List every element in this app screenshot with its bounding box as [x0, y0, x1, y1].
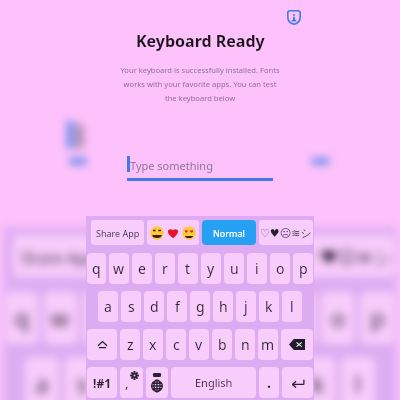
button[interactable]: g [183, 356, 217, 400]
button[interactable]: n [235, 329, 255, 360]
button[interactable]: s [121, 291, 141, 322]
button[interactable]: k [259, 291, 279, 322]
staticText: y [207, 259, 215, 278]
button[interactable]: p [293, 253, 313, 284]
button[interactable]: d [144, 291, 164, 322]
staticText: i [255, 259, 259, 278]
button[interactable]: y [202, 291, 236, 344]
staticText: p [370, 301, 386, 334]
button[interactable]: d [104, 356, 138, 400]
button[interactable]: t [178, 253, 198, 284]
button[interactable]: s [64, 356, 98, 400]
button[interactable]: q [87, 253, 106, 284]
staticText: c [173, 335, 180, 354]
staticText: e [138, 259, 146, 278]
button[interactable]: Normal [203, 234, 296, 277]
button[interactable]: a [98, 291, 118, 322]
button[interactable]: o [270, 253, 290, 284]
staticText: . [267, 373, 271, 392]
button[interactable]: Normal [202, 220, 256, 245]
button[interactable]: e [132, 253, 152, 284]
button[interactable]: l [341, 356, 375, 400]
staticText: Share App [96, 227, 140, 239]
staticText: g [193, 367, 209, 399]
button[interactable]: f [143, 356, 178, 400]
staticText: f [175, 297, 180, 316]
button[interactable]: Change language [146, 367, 168, 398]
staticText: Normal [213, 227, 245, 239]
button[interactable]: Share App [12, 234, 104, 277]
staticText: g [196, 297, 205, 316]
staticText: k [312, 367, 326, 399]
button[interactable]: o [320, 291, 355, 344]
staticText: t [185, 259, 191, 278]
button[interactable]: v [189, 329, 209, 360]
button[interactable]: !#1 [87, 367, 117, 398]
staticText: v [195, 335, 203, 354]
button[interactable]: t [162, 291, 197, 344]
button[interactable]: i [247, 253, 267, 284]
button[interactable]: g [190, 291, 210, 322]
staticText: a [35, 367, 49, 399]
button[interactable]: j [236, 291, 256, 322]
staticText: s [76, 367, 88, 399]
button[interactable]: u [241, 291, 276, 344]
button[interactable]: l [282, 291, 302, 322]
staticText: r [135, 301, 145, 334]
staticText: h [219, 297, 228, 316]
button[interactable] [147, 220, 199, 245]
button[interactable]: ♡♥☹≋シ [301, 234, 394, 277]
button[interactable]: h [213, 291, 233, 322]
staticText: Normal [222, 246, 277, 267]
button[interactable]: p [360, 291, 394, 344]
staticText: o [276, 259, 285, 278]
staticText: n [241, 335, 250, 354]
staticText: h [233, 367, 248, 399]
staticText: w [50, 301, 71, 334]
staticText: x [149, 335, 157, 354]
button[interactable]: y [201, 253, 221, 284]
staticText: q [14, 301, 30, 334]
staticText: j [276, 367, 283, 399]
button[interactable]: h [222, 356, 257, 400]
button[interactable]: b [212, 329, 232, 360]
button[interactable]: Shift [87, 329, 117, 360]
button[interactable]: Share App [91, 220, 144, 245]
button[interactable]: j [262, 356, 296, 400]
button[interactable]: k [301, 356, 336, 400]
button[interactable]: w [43, 291, 78, 344]
button[interactable]: e [83, 291, 117, 344]
staticText: e [93, 301, 107, 334]
staticText: t [174, 301, 184, 334]
button[interactable]: i [281, 291, 315, 344]
button[interactable]: w [109, 253, 129, 284]
button[interactable]: r [123, 291, 157, 344]
button[interactable]: a [25, 356, 59, 400]
button[interactable]: Comma and settings [120, 367, 143, 398]
button[interactable]: u [224, 253, 244, 284]
button[interactable]: x [143, 329, 163, 360]
button[interactable]: r [155, 253, 175, 284]
staticText: i [295, 301, 301, 334]
staticText: a [104, 297, 112, 316]
staticText: m [261, 335, 275, 354]
staticText: z [127, 335, 134, 354]
button[interactable]: z [120, 329, 140, 360]
button[interactable] [109, 234, 198, 277]
button[interactable]: Enter [282, 367, 313, 398]
staticText: r [162, 259, 168, 278]
button[interactable]: f [167, 291, 187, 322]
button[interactable]: . [259, 367, 279, 398]
button[interactable]: English [171, 367, 256, 398]
button[interactable]: ♡♥☹≋シ [259, 220, 313, 245]
staticText: d [150, 297, 159, 316]
staticText: Share App [21, 246, 97, 267]
button[interactable]: Backspace [281, 329, 313, 360]
staticText: u [230, 259, 239, 278]
staticText: Type something [130, 158, 213, 173]
button[interactable]: m [258, 329, 278, 360]
button[interactable]: q [6, 291, 38, 344]
button[interactable]: c [166, 329, 186, 360]
staticText: b [218, 335, 227, 354]
button[interactable]: Info [281, 5, 306, 30]
